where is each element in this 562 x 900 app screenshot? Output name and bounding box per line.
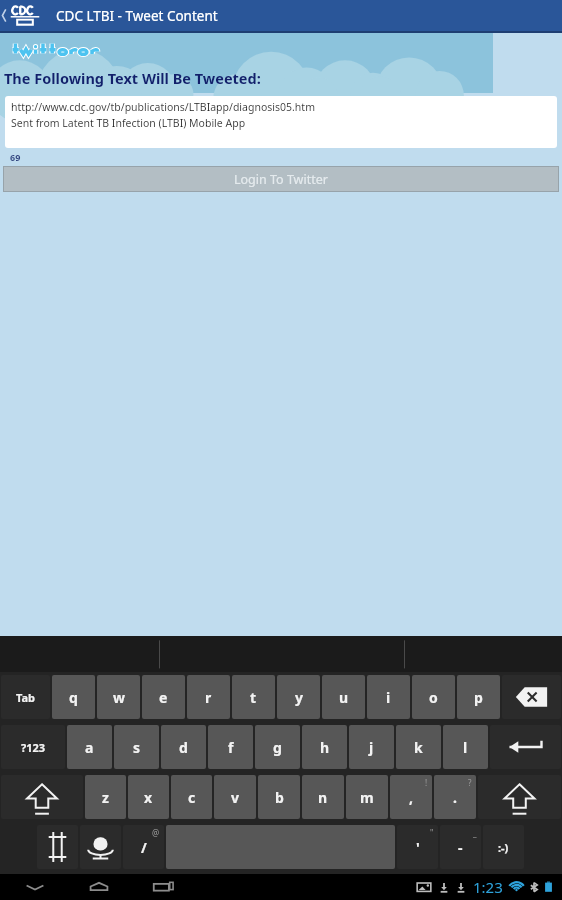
staticText: t [250, 688, 257, 707]
staticText: 1:23 [473, 877, 503, 897]
button[interactable]: p [457, 675, 500, 719]
staticText: h [320, 738, 330, 757]
staticText: w [113, 688, 125, 707]
staticText: Tab [16, 690, 36, 705]
button[interactable]: y [277, 675, 320, 719]
staticText: l [463, 738, 468, 757]
button[interactable]: q [52, 675, 95, 719]
staticText: o [429, 688, 438, 707]
staticText: s [133, 738, 141, 757]
button[interactable]: Login To Twitter [4, 167, 558, 191]
staticText: The Following Text Will Be Tweeted: [4, 68, 261, 88]
staticText: ' [416, 838, 420, 857]
staticText: p [474, 688, 483, 707]
staticText: @ [152, 827, 160, 838]
button[interactable]: Recent apps [142, 874, 184, 900]
staticText: http://www.cdc.gov/tb/publications/LTBIa… [11, 100, 315, 114]
button[interactable]: n [302, 775, 344, 819]
staticText: d [179, 738, 188, 757]
button[interactable]: k [396, 725, 441, 769]
staticText: x [144, 788, 153, 807]
staticText: Login To Twitter [234, 171, 328, 188]
button[interactable]: h [302, 725, 347, 769]
staticText: :-) [498, 840, 509, 855]
staticText: ! [425, 777, 428, 788]
button[interactable]: v [214, 775, 256, 819]
button[interactable]: f [208, 725, 253, 769]
button[interactable]: w [97, 675, 140, 719]
button[interactable]: Shift [478, 775, 561, 819]
staticText: f [228, 738, 234, 757]
staticText: b [275, 788, 284, 807]
staticText: i [386, 688, 391, 707]
button[interactable]: e [142, 675, 185, 719]
button[interactable]: :-) [483, 825, 524, 869]
button[interactable]: o [412, 675, 455, 719]
staticText: g [273, 738, 282, 757]
button[interactable]: Switch keyboard [37, 825, 78, 869]
staticText: m [360, 788, 374, 807]
staticText: v [231, 788, 239, 807]
button[interactable]: . [434, 775, 476, 819]
staticText: CDC LTBI - Tweet Content [56, 7, 218, 25]
button[interactable]: j [349, 725, 394, 769]
staticText: y [295, 688, 303, 707]
button[interactable]: t [232, 675, 275, 719]
button[interactable]: s [114, 725, 159, 769]
button[interactable]: Voice input [80, 825, 121, 869]
staticText: e [159, 688, 168, 707]
button[interactable]: u [322, 675, 365, 719]
staticText: ? [468, 777, 472, 788]
button[interactable]: a [67, 725, 112, 769]
button[interactable]: - [440, 825, 481, 869]
button[interactable]: Tab [1, 675, 50, 719]
staticText: . [453, 788, 457, 807]
staticText: _ [473, 827, 477, 838]
button[interactable]: i [367, 675, 410, 719]
staticText: a [85, 738, 94, 757]
button[interactable]: m [346, 775, 388, 819]
staticText: z [102, 788, 109, 807]
button[interactable]: Delete [502, 675, 561, 719]
staticText: j [369, 738, 374, 757]
staticText: n [318, 788, 328, 807]
button[interactable]: / [123, 825, 164, 869]
staticText: k [414, 738, 423, 757]
button[interactable]: z [85, 775, 126, 819]
staticText: r [205, 688, 212, 707]
staticText: ?123 [21, 740, 46, 755]
button[interactable]: Home [78, 874, 120, 900]
staticText: 69 [10, 151, 21, 163]
button[interactable]: d [161, 725, 206, 769]
button[interactable]: Enter [490, 725, 561, 769]
button[interactable]: g [255, 725, 300, 769]
button[interactable]: Suggestion 3 [404, 636, 562, 672]
button[interactable]: r [187, 675, 230, 719]
button[interactable]: Navigate up, CDC LTBI [0, 0, 50, 31]
button[interactable]: ' [397, 825, 438, 869]
staticText: Sent from Latent TB Infection (LTBI) Mob… [11, 116, 246, 130]
button[interactable]: l [443, 725, 488, 769]
button[interactable]: Hide keyboard [14, 874, 56, 900]
button[interactable]: , [390, 775, 432, 819]
button[interactable]: c [171, 775, 212, 819]
staticText: / [141, 838, 147, 857]
staticText: u [339, 688, 349, 707]
button[interactable]: ?123 [1, 725, 65, 769]
button[interactable]: b [258, 775, 300, 819]
staticText: , [409, 788, 413, 807]
staticText: q [69, 688, 78, 707]
button[interactable]: Shift [1, 775, 83, 819]
staticText: " [430, 827, 434, 838]
button[interactable]: http://www.cdc.gov/tb/publications/LTBIa… [5, 96, 557, 148]
staticText: c [188, 788, 196, 807]
button[interactable]: x [128, 775, 169, 819]
staticText: - [458, 838, 463, 857]
